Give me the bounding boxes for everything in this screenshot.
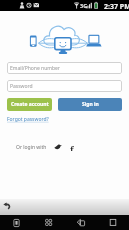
staticText: Password xyxy=(10,83,33,90)
staticText: Or login with xyxy=(16,144,47,151)
staticText: 3G xyxy=(80,2,88,9)
staticText: Forgot password? xyxy=(7,116,49,123)
button[interactable]: Recent apps xyxy=(97,215,129,230)
staticText: Email/Phone number xyxy=(10,65,60,72)
button[interactable]: Sign in xyxy=(58,98,122,111)
button[interactable]: Undo xyxy=(1,201,13,213)
button[interactable]: Back xyxy=(65,215,97,230)
button[interactable]: Apps xyxy=(33,215,65,230)
staticText: Create account xyxy=(11,101,49,108)
button[interactable]: Menu xyxy=(0,215,33,230)
button[interactable]: Email/Phone number xyxy=(7,62,122,74)
staticText: 2:37 PM xyxy=(104,2,129,12)
staticText: f xyxy=(70,143,74,151)
button[interactable]: Create account xyxy=(7,98,52,111)
button[interactable]: Password xyxy=(7,80,122,92)
button[interactable]: Login with Twitter xyxy=(54,143,62,151)
button[interactable]: Login with Facebook xyxy=(68,143,76,151)
button[interactable]: Forgot password? xyxy=(7,116,49,123)
staticText: Sign in xyxy=(82,101,99,108)
